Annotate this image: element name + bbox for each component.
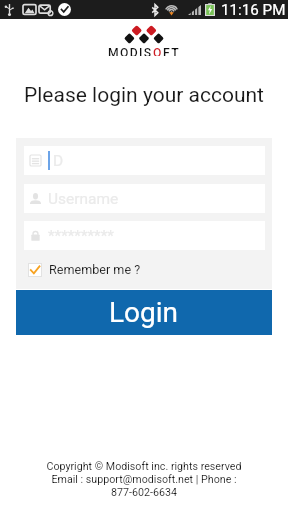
staticText: Email : support@modisoft.net | Phone : [51,473,237,486]
staticText: D [53,152,64,170]
staticText: 877-602-6634 [111,486,177,499]
staticText: Username [48,190,119,208]
staticText: 11:16 PM [221,1,286,19]
staticText: Copyright © Modisoft inc. rights reserve… [46,460,242,473]
staticText: MODIS [108,46,153,56]
staticText: Login [109,296,179,329]
button[interactable]: D [24,146,265,175]
staticText: FT [163,46,180,56]
button[interactable]: Username [24,184,265,213]
staticText: O [153,46,163,56]
staticText: Please login your account [0,83,288,108]
button[interactable]: ********** [24,221,265,250]
button[interactable]: Login [16,290,272,335]
button[interactable]: Remember me ? [24,262,141,277]
staticText: Remember me ? [49,262,141,277]
staticText: ********** [48,227,114,245]
